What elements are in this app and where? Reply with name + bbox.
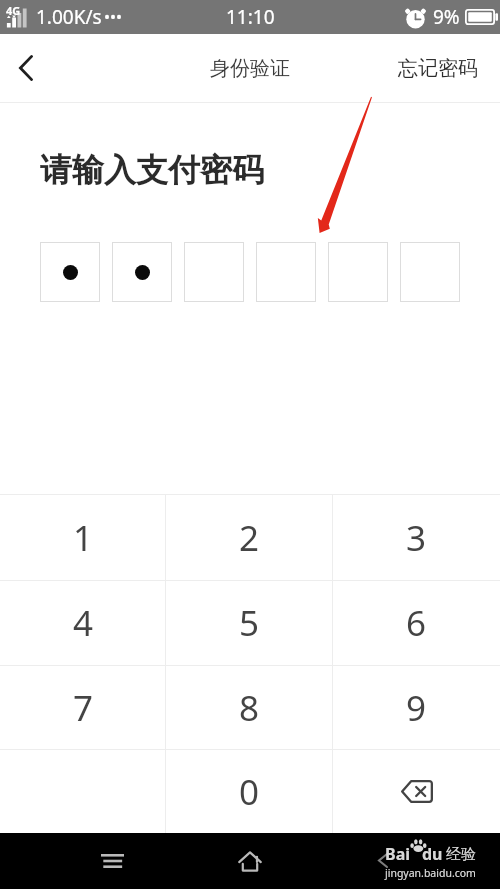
staticText: 身份验证 [210,56,290,81]
button[interactable]: 9 [333,666,500,749]
staticText: 6 [406,599,427,647]
button[interactable]: 0 [166,750,333,833]
button[interactable]: 1 [0,495,166,580]
button[interactable] [112,242,172,302]
button[interactable]: Menu [74,833,150,889]
staticText: 请输入支付密码 [40,150,264,190]
button[interactable] [184,242,244,302]
staticText: 8 [239,684,260,732]
staticText: 5 [239,599,260,647]
staticText: 1 [73,514,94,562]
button[interactable]: 7 [0,666,166,749]
staticText: 1.00K/s [36,4,102,30]
button[interactable]: 4 [0,581,166,665]
staticText: 忘记密码 [398,56,478,81]
button[interactable]: Home [212,833,288,889]
button[interactable]: 5 [166,581,333,665]
other: Delete [401,780,433,803]
staticText: 9 [406,684,427,732]
button[interactable]: 8 [166,666,333,749]
staticText: 4 [73,599,94,647]
button[interactable]: Delete [333,750,500,833]
button[interactable] [256,242,316,302]
staticText: 3 [406,514,427,562]
staticText: 11:10 [226,4,275,30]
staticText: Bai [385,843,411,865]
button[interactable] [400,242,460,302]
staticText: ••• [104,6,123,28]
staticText: 2 [239,514,260,562]
staticText: 4G [6,3,21,18]
staticText: 经验 [446,845,476,864]
staticText: 0 [239,768,260,816]
button[interactable]: 3 [333,495,500,580]
button[interactable]: 2 [166,495,333,580]
staticText: 7 [73,684,94,732]
staticText: jingyan.baidu.com [385,866,476,880]
button[interactable]: 6 [333,581,500,665]
staticText: du [422,843,443,865]
button[interactable] [40,242,100,302]
button[interactable]: Back [345,833,421,889]
button[interactable]: 忘记密码 [376,34,500,102]
staticText: 9% [433,4,460,30]
button[interactable]: Back [0,34,52,102]
button[interactable] [328,242,388,302]
